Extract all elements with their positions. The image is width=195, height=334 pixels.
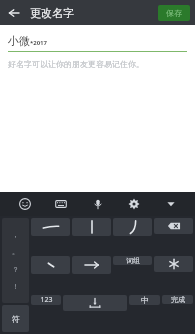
staticText: ！ — [12, 282, 19, 291]
staticText: 小微 — [8, 34, 30, 48]
button[interactable]: Wildcard — [154, 256, 193, 272]
button[interactable]: 中 — [129, 295, 160, 305]
staticText: 保存 — [166, 8, 182, 18]
button[interactable]: Stroke zhe — [72, 256, 111, 274]
button[interactable]: Voice input — [86, 192, 110, 216]
button[interactable]: 完成 — [162, 295, 193, 304]
staticText: 中 — [141, 295, 149, 305]
staticText: *2017 — [30, 39, 47, 47]
button[interactable]: 词组 — [113, 256, 152, 265]
button[interactable]: Stroke shu — [72, 218, 111, 236]
button[interactable]: Backspace — [154, 218, 193, 234]
button[interactable]: Settings — [122, 192, 146, 216]
staticText: 完成 — [171, 295, 185, 304]
button[interactable]: Space — [63, 295, 127, 311]
staticText: ， — [12, 230, 19, 239]
button[interactable]: Hide keyboard — [159, 192, 183, 216]
button[interactable]: Stroke dian — [31, 256, 70, 274]
staticText: 123 — [40, 295, 53, 305]
staticText: 词组 — [126, 256, 140, 265]
button[interactable]: Punctuation — [2, 218, 29, 303]
button[interactable]: Stroke heng — [31, 218, 70, 236]
button[interactable]: Keyboard — [49, 192, 73, 216]
button[interactable]: Stroke pie — [113, 218, 152, 236]
staticText: 好名字可以让你的朋友更容易记住你。 — [8, 59, 144, 69]
button[interactable]: 保存 — [158, 5, 190, 21]
staticText: ？ — [12, 265, 19, 274]
button[interactable]: 123 — [31, 295, 61, 305]
staticText: 符 — [12, 314, 20, 324]
button[interactable]: 符 — [2, 305, 29, 332]
staticText: 更改名字 — [30, 6, 74, 20]
staticText: 。 — [12, 247, 19, 256]
button[interactable]: Back — [3, 2, 25, 24]
button[interactable]: Emoji — [13, 192, 37, 216]
